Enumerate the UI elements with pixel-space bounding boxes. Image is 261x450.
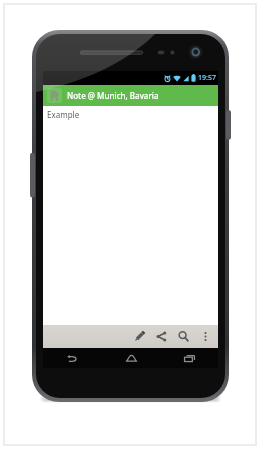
button[interactable]: Home xyxy=(102,348,160,368)
button[interactable]: More options xyxy=(194,325,216,348)
button[interactable]: Back xyxy=(43,348,102,368)
staticText: Note @ Munich, Bavaria xyxy=(67,90,159,101)
button[interactable]: Search xyxy=(172,325,194,348)
staticText: 19:57 xyxy=(198,73,216,83)
staticText: Example xyxy=(47,109,80,120)
other: Evernote xyxy=(47,88,62,103)
button[interactable]: Recent apps xyxy=(160,348,218,368)
button[interactable]: Edit xyxy=(128,325,150,348)
button[interactable]: Evernote xyxy=(43,85,218,106)
button[interactable]: Share xyxy=(150,325,172,348)
